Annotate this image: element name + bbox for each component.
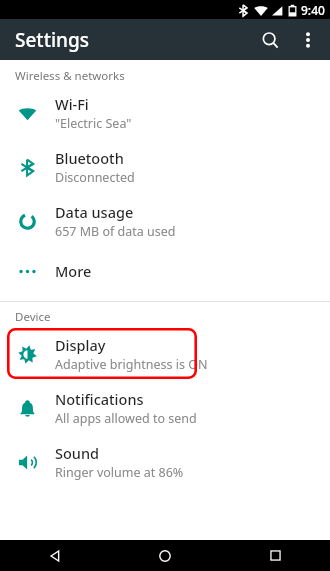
button[interactable]: More [0,248,330,294]
button[interactable]: More options [290,22,326,58]
staticText: Bluetooth [55,148,124,168]
button[interactable]: Sound [0,435,330,489]
button[interactable]: Back [0,540,110,571]
staticText: Adaptive brightness is ON [55,356,208,373]
button[interactable]: Data usage [0,194,330,248]
staticText: All apps allowed to send [55,410,197,427]
staticText: More [55,261,92,281]
staticText: Device [15,309,51,325]
staticText: Notifications [55,389,144,409]
button[interactable]: Bluetooth [0,140,330,194]
staticText: Sound [55,443,100,463]
staticText: Display [55,335,106,355]
button[interactable]: Recents [220,540,330,571]
staticText: Disconnected [55,169,135,186]
button[interactable]: Search [250,20,290,60]
staticText: Wi-Fi [55,94,89,114]
staticText: 9:40 [301,2,325,18]
staticText: Settings [15,27,89,53]
staticText: "Electric Sea" [55,115,132,132]
staticText: Ringer volume at 86% [55,464,184,481]
button[interactable]: Notifications [0,381,330,435]
button[interactable]: Display [0,327,330,381]
staticText: 657 MB of data used [55,223,176,240]
staticText: Wireless & networks [15,68,125,84]
button[interactable]: Wi-Fi [0,86,330,140]
staticText: Data usage [55,202,134,222]
button[interactable]: Home [110,540,220,571]
